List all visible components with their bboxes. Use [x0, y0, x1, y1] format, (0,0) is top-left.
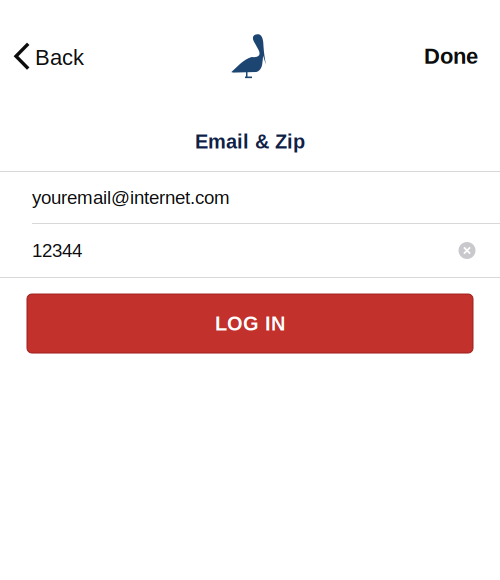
button[interactable]: youremail@internet.com [0, 172, 500, 223]
staticText: Done [424, 44, 478, 68]
button[interactable]: Clear zip code [450, 233, 484, 267]
button[interactable]: LOG IN [27, 294, 473, 353]
button[interactable]: Done [413, 34, 489, 78]
staticText: youremail@internet.com [32, 187, 230, 208]
button[interactable]: Back [6, 33, 98, 77]
staticText: LOG IN [215, 312, 285, 335]
staticText: Back [35, 45, 84, 70]
staticText: Email & Zip [195, 130, 305, 153]
button[interactable]: 12344 [0, 224, 500, 277]
staticText: 12344 [32, 240, 82, 261]
